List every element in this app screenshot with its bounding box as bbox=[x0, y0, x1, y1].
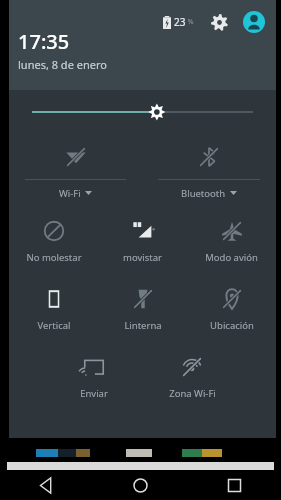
button[interactable]: Bluetooth bbox=[142, 134, 276, 206]
button[interactable]: Battery 23 percent charging bbox=[163, 15, 194, 29]
button[interactable]: User profile bbox=[242, 10, 266, 34]
staticText: Enviar bbox=[80, 387, 108, 400]
button[interactable]: Back bbox=[0, 470, 93, 500]
button[interactable]: Home bbox=[93, 470, 187, 500]
staticText: 17:35 bbox=[18, 28, 70, 55]
button[interactable]: Vertical bbox=[9, 274, 98, 342]
staticText: Bluetooth bbox=[181, 187, 226, 200]
staticText: 23 bbox=[174, 15, 186, 29]
button[interactable]: Enviar bbox=[52, 342, 136, 410]
button[interactable]: Settings bbox=[208, 11, 230, 33]
staticText: Ubicación bbox=[210, 319, 254, 332]
button[interactable]: Linterna bbox=[98, 274, 187, 342]
staticText: % bbox=[186, 17, 194, 27]
button[interactable]: No molestar bbox=[9, 206, 98, 274]
staticText: Zona Wi-Fi bbox=[169, 387, 216, 400]
button[interactable]: Recent apps bbox=[187, 470, 281, 500]
staticText: Modo avión bbox=[205, 251, 258, 264]
button[interactable]: movistar bbox=[98, 206, 187, 274]
staticText: Linterna bbox=[124, 319, 162, 332]
button[interactable]: Brightness bbox=[9, 90, 276, 134]
staticText: No molestar bbox=[26, 251, 82, 264]
staticText: movistar bbox=[123, 251, 162, 264]
staticText: lunes, 8 de enero bbox=[18, 57, 107, 72]
button[interactable]: Modo avión bbox=[187, 206, 276, 274]
button[interactable]: Zona Wi-Fi bbox=[150, 342, 234, 410]
button[interactable]: Ubicación bbox=[187, 274, 276, 342]
button[interactable]: Wi-Fi bbox=[9, 134, 142, 206]
staticText: Vertical bbox=[37, 319, 71, 332]
staticText: Wi-Fi bbox=[59, 187, 81, 200]
